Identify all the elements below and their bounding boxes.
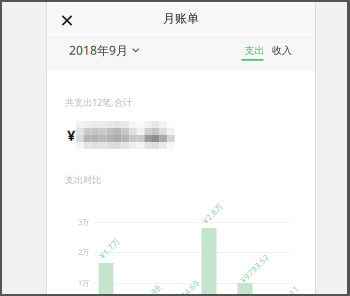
staticText: 月账单 — [163, 11, 199, 26]
staticText: ¥ — [67, 125, 75, 145]
staticText: 共支出12笔,合计 — [65, 96, 132, 109]
staticText: 2万 — [78, 247, 89, 257]
staticText: ¥4324.60 — [166, 289, 203, 296]
button[interactable]: Close — [51, 5, 83, 36]
staticText: ¥1.7万 — [97, 243, 122, 254]
staticText: 3万 — [78, 217, 89, 227]
staticText: 支出 — [244, 44, 264, 57]
staticText: ¥2.8万 — [200, 208, 225, 219]
button[interactable]: 2018年9月 — [63, 35, 145, 65]
staticText: 支出对比 — [65, 174, 101, 186]
staticText: 1万 — [78, 278, 89, 288]
staticText: 收入 — [272, 44, 292, 57]
staticText: 2018年9月 — [69, 42, 128, 58]
staticText: ¥9793.52 — [236, 263, 273, 274]
staticText: ¥784.11 — [270, 293, 302, 296]
staticText: ¥123.98 — [132, 292, 164, 296]
button[interactable]: 支出 — [239, 39, 269, 68]
button[interactable]: 收入 — [267, 39, 297, 68]
